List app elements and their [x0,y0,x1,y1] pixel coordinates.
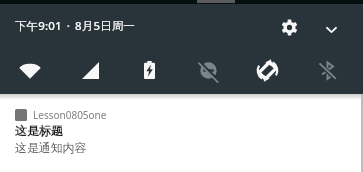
staticText: 这是标题 [15,124,63,139]
button[interactable]: Lesson0805one [0,94,363,172]
button[interactable]: Do not disturb off [191,53,225,87]
staticText: 下午9:01 · 8月5日周一 [15,18,135,34]
button[interactable]: Wi-Fi [13,53,47,87]
button[interactable]: Settings [273,11,305,43]
button[interactable]: Bluetooth off [310,53,344,87]
staticText: 这是通知内容 [15,141,87,156]
button[interactable]: Battery charging [132,53,166,87]
button[interactable]: Auto rotate [250,53,284,87]
button[interactable]: Mobile signal [73,53,107,87]
staticText: Lesson0805one [33,108,107,122]
button[interactable]: Expand quick settings [314,12,346,44]
